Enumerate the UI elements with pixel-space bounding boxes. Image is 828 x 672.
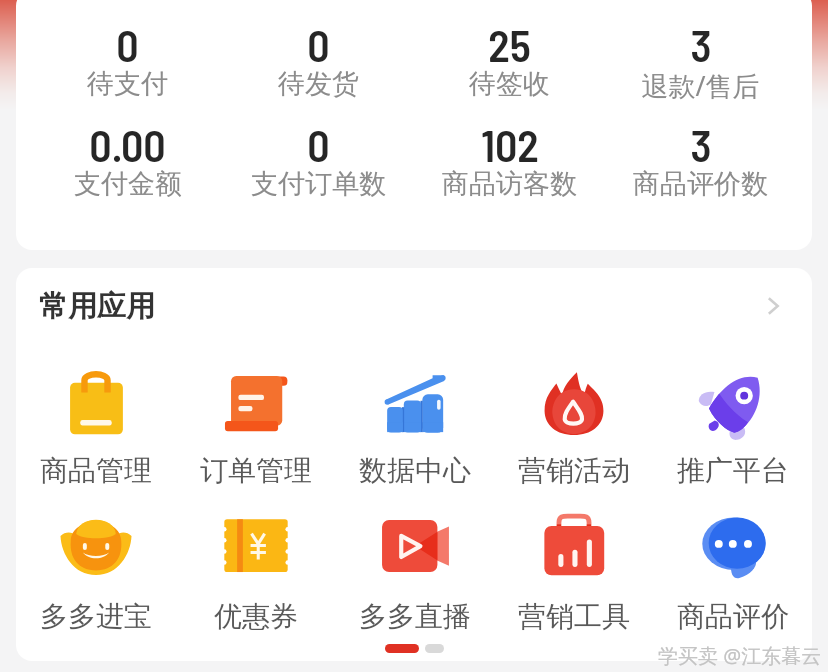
staticText: 待支付 bbox=[87, 67, 168, 101]
staticText: 3 bbox=[690, 118, 712, 171]
staticText: 学买卖 @江东暮云 bbox=[658, 642, 822, 669]
button[interactable]: 常用应用 bbox=[16, 268, 812, 344]
button[interactable]: 营销活动 bbox=[494, 371, 653, 488]
staticText: 商品评价数 bbox=[633, 167, 768, 201]
button[interactable]: 25 bbox=[414, 18, 605, 105]
staticText: 营销工具 bbox=[518, 599, 630, 634]
button[interactable]: 商品评价 bbox=[653, 517, 812, 634]
staticText: 数据中心 bbox=[359, 453, 471, 488]
button[interactable]: 0 bbox=[223, 18, 414, 105]
staticText: 营销活动 bbox=[518, 453, 630, 488]
staticText: 待发货 bbox=[278, 67, 359, 101]
staticText: 0 bbox=[307, 18, 330, 71]
button[interactable]: 营销工具 bbox=[494, 517, 653, 634]
staticText: 推广平台 bbox=[677, 453, 789, 488]
button[interactable]: 3 bbox=[605, 18, 796, 108]
staticText: 订单管理 bbox=[200, 453, 312, 488]
staticText: 商品管理 bbox=[40, 453, 152, 488]
button[interactable]: 0.00 bbox=[32, 118, 223, 205]
staticText: 多多直播 bbox=[359, 599, 471, 634]
staticText: 多多进宝 bbox=[40, 599, 152, 634]
button[interactable]: 推广平台 bbox=[653, 371, 812, 488]
button[interactable]: 多多直播 bbox=[335, 517, 494, 634]
button[interactable]: 商品管理 bbox=[16, 371, 176, 488]
button[interactable]: 0 bbox=[223, 118, 414, 205]
staticText: 0 bbox=[116, 18, 139, 71]
button[interactable]: 3 bbox=[605, 118, 796, 205]
staticText: 待签收 bbox=[469, 67, 550, 101]
staticText: 支付订单数 bbox=[251, 167, 386, 201]
button[interactable]: 0 bbox=[32, 18, 223, 105]
staticText: 102 bbox=[481, 118, 539, 171]
staticText: 0 bbox=[307, 118, 330, 171]
staticText: 25 bbox=[488, 18, 531, 71]
staticText: 商品评价 bbox=[677, 599, 789, 634]
staticText: 0.00 bbox=[89, 118, 166, 171]
staticText: 支付金额 bbox=[74, 167, 182, 201]
staticText: 退款/售后 bbox=[641, 67, 760, 104]
button[interactable]: 订单管理 bbox=[176, 371, 335, 488]
staticText: 常用应用 bbox=[39, 288, 155, 325]
button[interactable]: 数据中心 bbox=[335, 371, 494, 488]
staticText: 商品访客数 bbox=[442, 167, 577, 201]
staticText: 优惠券 bbox=[214, 599, 298, 634]
button[interactable]: 多多进宝 bbox=[16, 517, 176, 634]
button[interactable]: 102 bbox=[414, 118, 605, 205]
staticText: 3 bbox=[690, 18, 712, 71]
button[interactable]: 优惠券 bbox=[176, 517, 335, 634]
